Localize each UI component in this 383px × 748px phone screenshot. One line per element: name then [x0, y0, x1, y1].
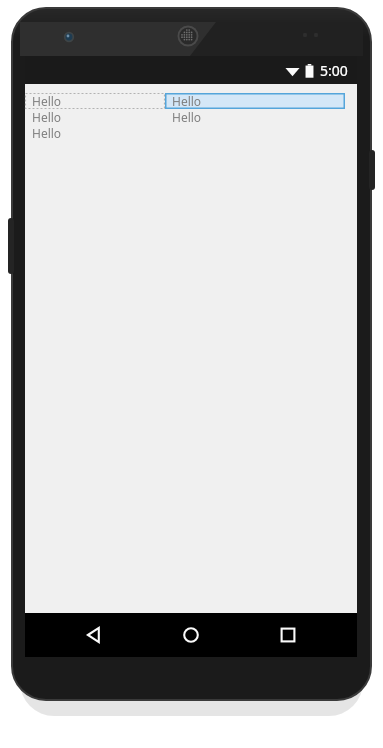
button[interactable]: Hello: [165, 93, 345, 109]
button[interactable]: Hello: [25, 125, 165, 141]
button[interactable]: Hello: [165, 109, 345, 125]
button[interactable]: Home: [163, 613, 219, 657]
staticText: Hello: [32, 125, 62, 141]
button[interactable]: Hello: [25, 93, 165, 109]
button[interactable]: Recent apps: [260, 613, 316, 657]
staticText: Hello: [32, 109, 62, 125]
button[interactable]: Hello: [25, 109, 165, 125]
staticText: Hello: [32, 93, 62, 109]
staticText: Hello: [172, 93, 202, 109]
staticText: Hello: [172, 109, 202, 125]
staticText: 5:00: [320, 61, 348, 80]
button[interactable]: Back: [66, 613, 122, 657]
